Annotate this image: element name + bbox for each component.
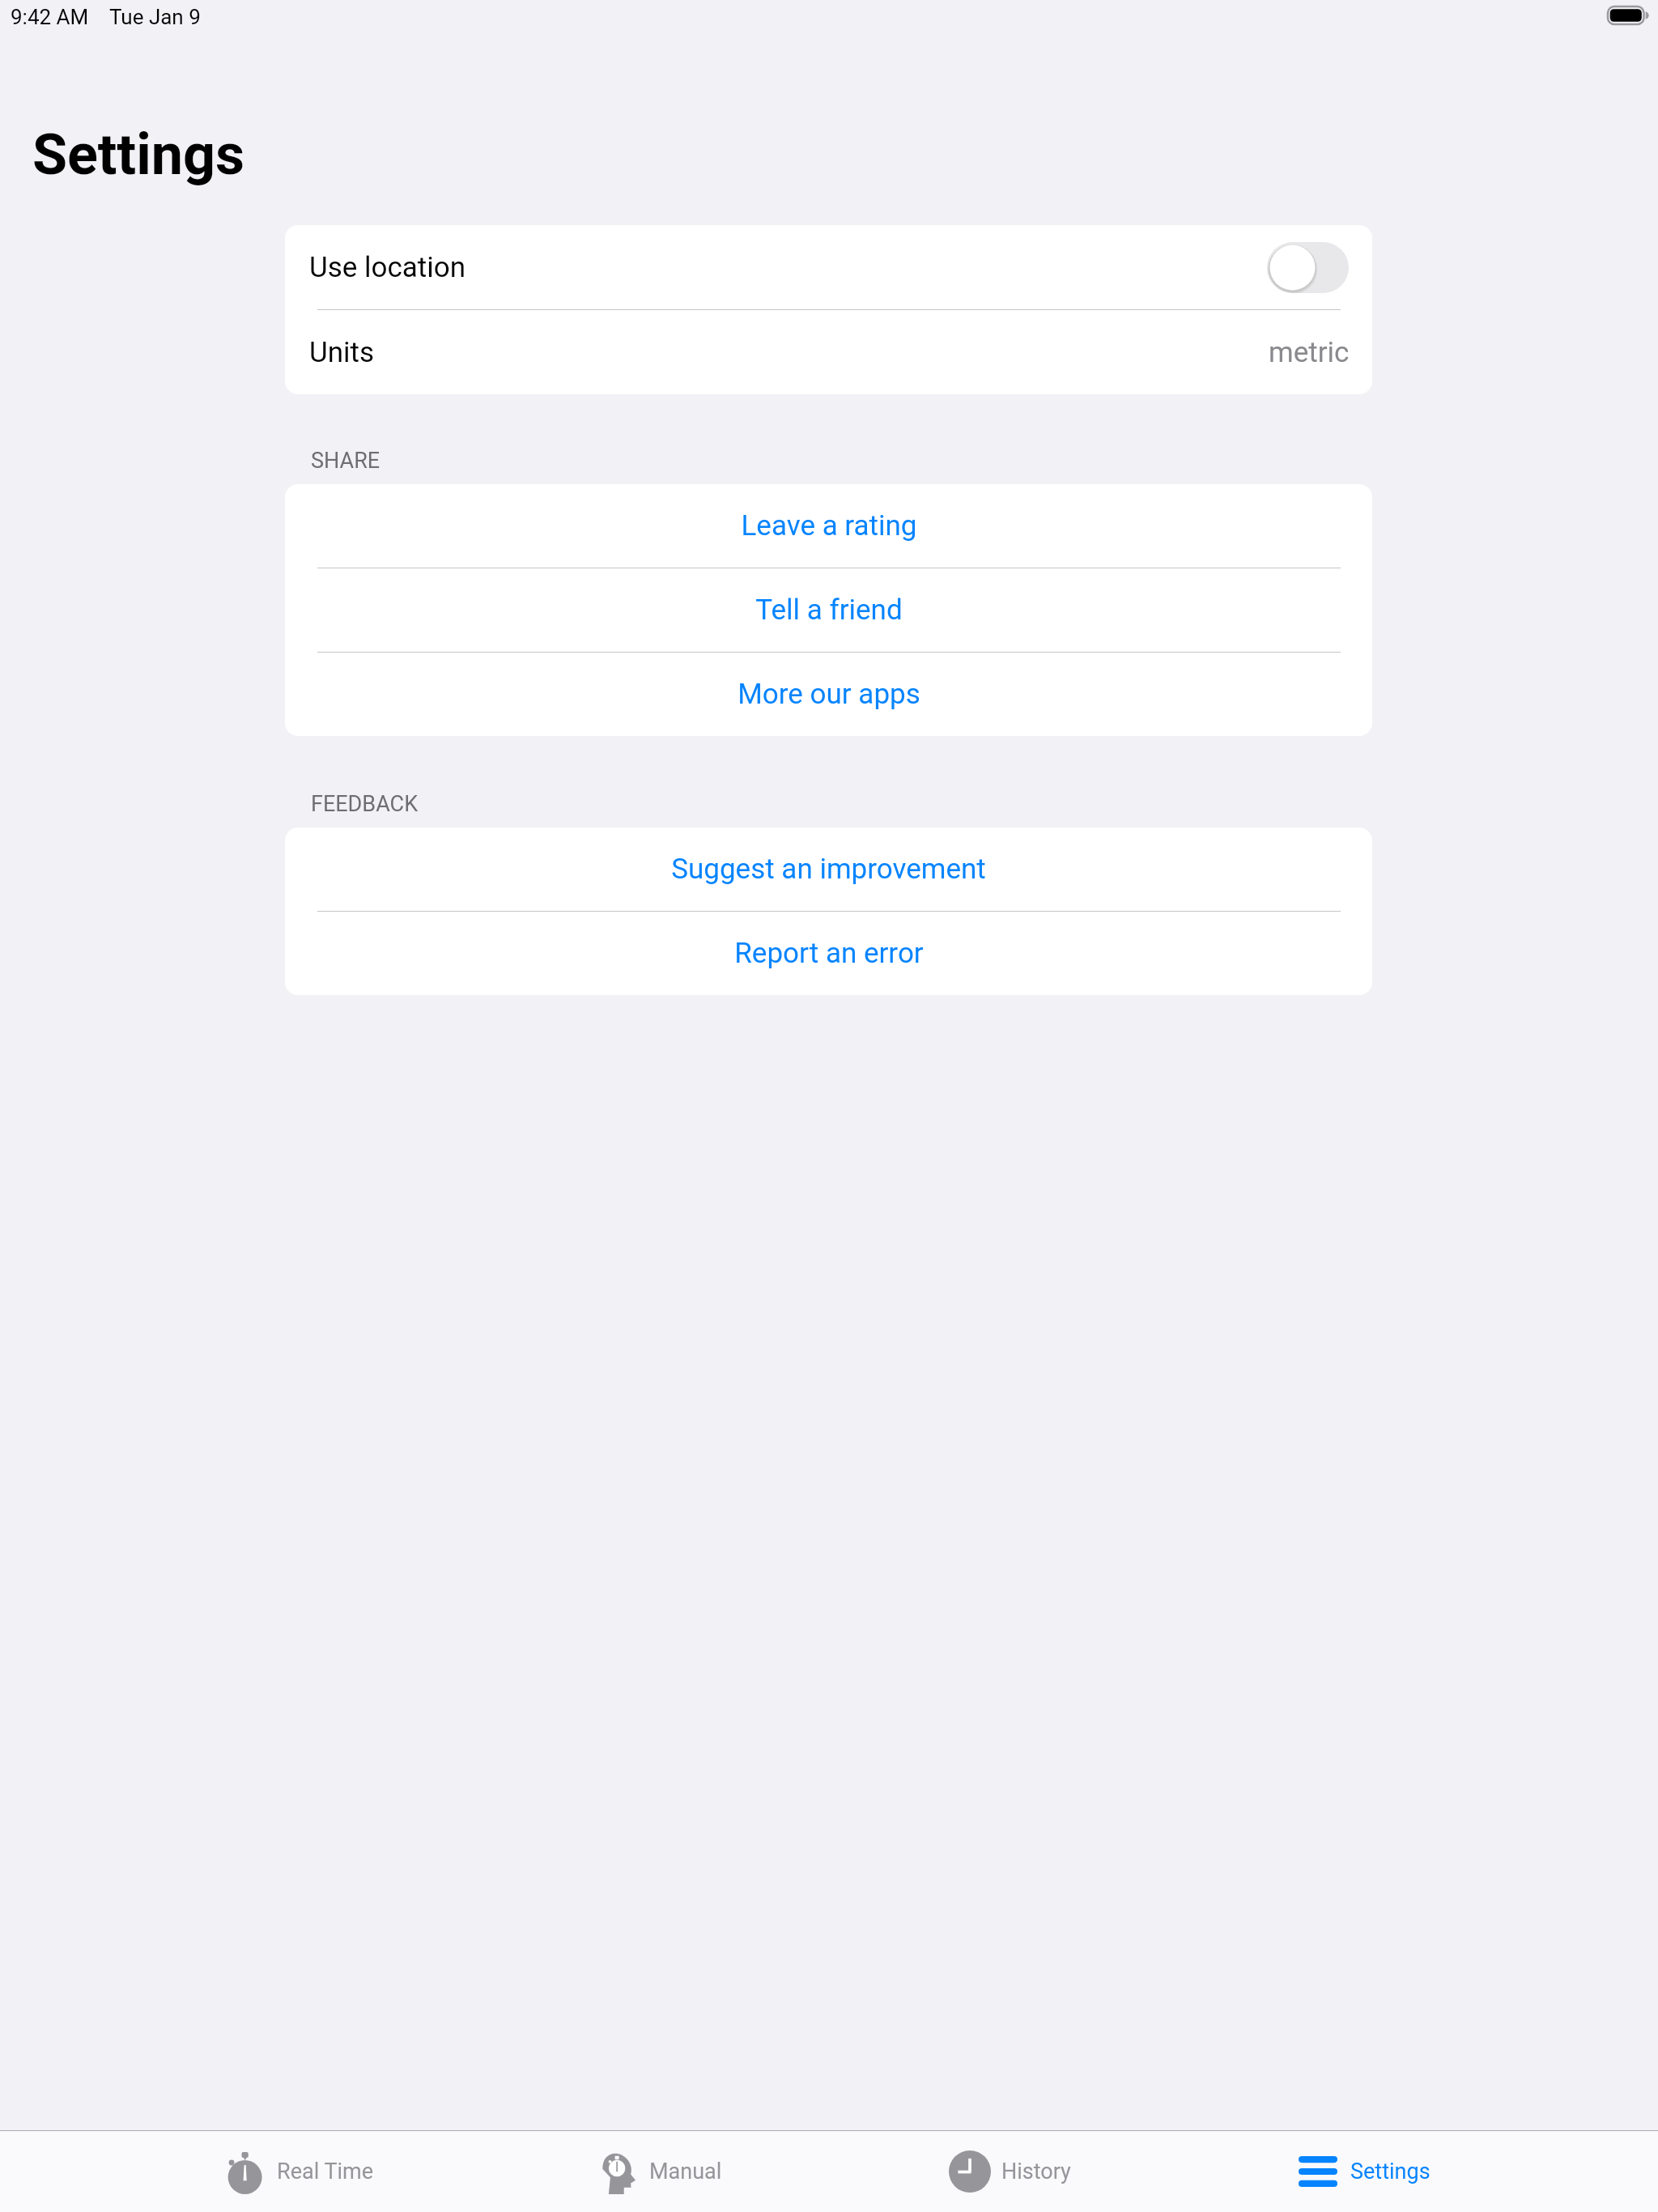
other: History bbox=[949, 2150, 991, 2193]
button[interactable]: Units bbox=[285, 310, 1372, 394]
button[interactable]: Tell a friend bbox=[285, 568, 1372, 652]
button[interactable]: Use location toggle bbox=[1267, 242, 1349, 293]
staticText: Report an error bbox=[734, 937, 924, 970]
button[interactable]: Report an error bbox=[285, 912, 1372, 995]
staticText: 9:42 AM bbox=[11, 5, 89, 29]
other: Real Time bbox=[227, 2152, 265, 2196]
staticText: SHARE bbox=[311, 448, 380, 474]
staticText: Units bbox=[309, 336, 375, 369]
button[interactable]: Settings bbox=[1299, 2131, 1431, 2212]
staticText: metric bbox=[1269, 336, 1350, 369]
staticText: Real Time bbox=[277, 2159, 374, 2184]
staticText: Suggest an improvement bbox=[671, 853, 986, 886]
staticText: History bbox=[1001, 2159, 1071, 2184]
staticText: Manual bbox=[649, 2159, 722, 2184]
staticText: Tue Jan 9 bbox=[109, 5, 201, 29]
staticText: Use location bbox=[309, 251, 466, 284]
button[interactable]: Real Time bbox=[227, 2131, 374, 2212]
other: Settings bbox=[1299, 2156, 1337, 2187]
button[interactable]: Manual bbox=[602, 2131, 722, 2212]
button[interactable]: Use location bbox=[285, 225, 1372, 309]
staticText: Tell a friend bbox=[755, 593, 903, 627]
button[interactable]: Suggest an improvement bbox=[285, 827, 1372, 911]
staticText: Leave a rating bbox=[741, 509, 917, 542]
other: Manual bbox=[602, 2152, 636, 2194]
staticText: More our apps bbox=[738, 678, 920, 711]
staticText: Settings bbox=[32, 121, 244, 188]
staticText: Settings bbox=[1350, 2159, 1431, 2184]
staticText: FEEDBACK bbox=[311, 791, 419, 817]
button[interactable]: Leave a rating bbox=[285, 484, 1372, 568]
button[interactable]: More our apps bbox=[285, 653, 1372, 736]
button[interactable]: History bbox=[949, 2131, 1071, 2212]
